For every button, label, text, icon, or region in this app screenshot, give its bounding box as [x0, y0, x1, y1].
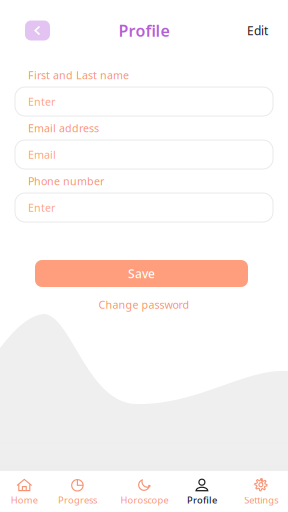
- staticText: Email: [28, 147, 56, 162]
- staticText: Settings: [244, 494, 278, 506]
- staticText: Save: [128, 265, 155, 281]
- staticText: Change password: [98, 297, 189, 312]
- button[interactable]: Edit: [247, 22, 268, 38]
- staticText: Home: [11, 494, 38, 506]
- button[interactable]: Save: [35, 260, 248, 287]
- button[interactable]: Change password: [0, 298, 288, 311]
- staticText: Progress: [58, 494, 97, 506]
- button[interactable]: Progress: [58, 471, 115, 512]
- staticText: Phone number: [28, 174, 104, 188]
- staticText: Profile: [187, 494, 217, 506]
- staticText: Edit: [247, 22, 268, 38]
- button[interactable]: Back: [25, 20, 50, 40]
- button[interactable]: Settings: [230, 471, 288, 512]
- staticText: Enter: [28, 200, 55, 215]
- staticText: Enter: [28, 94, 55, 109]
- staticText: Profile: [118, 20, 169, 41]
- button[interactable]: Profile: [173, 471, 230, 512]
- button[interactable]: Home: [0, 471, 58, 512]
- staticText: First and Last name: [28, 68, 129, 82]
- button[interactable]: Horoscope: [115, 471, 173, 512]
- staticText: Horoscope: [120, 494, 168, 506]
- staticText: Email address: [28, 121, 99, 135]
